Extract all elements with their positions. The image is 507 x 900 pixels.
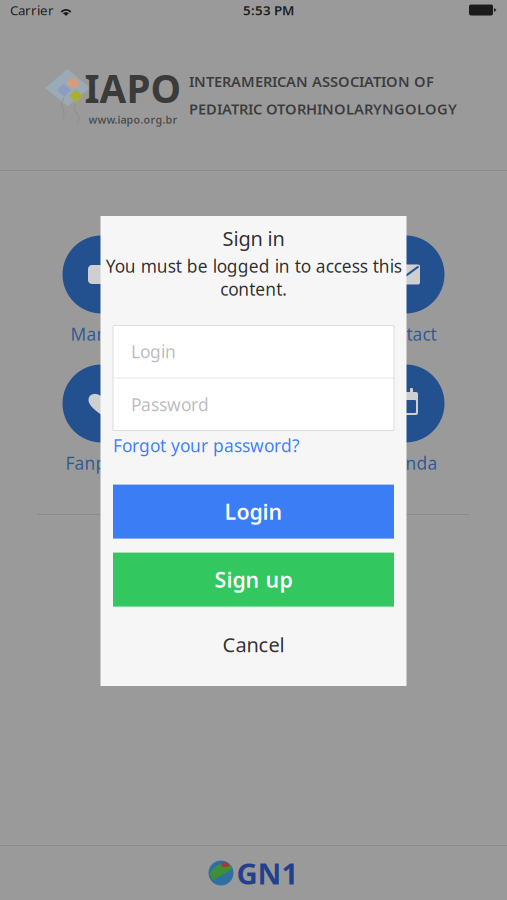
staticText: Login: [224, 497, 282, 526]
staticText: Photos: [226, 451, 281, 474]
staticText: Login: [131, 340, 176, 363]
button[interactable]: Videos: [177, 237, 329, 344]
button[interactable]: Photos: [177, 366, 329, 473]
button[interactable]: Forgot your password?: [113, 433, 394, 459]
staticText: www.iapo.org.br: [88, 113, 177, 127]
staticText: Agenda: [373, 451, 437, 474]
button[interactable]: Login: [113, 485, 394, 539]
staticText: Sign up: [214, 565, 292, 594]
staticText: IAPO: [84, 62, 181, 113]
button[interactable]: Agenda: [329, 366, 481, 473]
button[interactable]: Fanpage: [25, 366, 177, 473]
staticText: PEDIATRIC OTORHINOLARYNGOLOGY: [189, 99, 457, 118]
staticText: Fanpage: [65, 451, 137, 474]
staticText: Forgot your password?: [113, 434, 300, 457]
staticText: GN1: [236, 853, 298, 892]
staticText: Videos: [227, 322, 280, 345]
button[interactable]: Sign up: [113, 553, 394, 607]
staticText: You must be logged in to access this con…: [105, 255, 401, 301]
staticText: Contact: [374, 322, 436, 345]
button[interactable]: Cancel: [113, 619, 394, 671]
staticText: INTERAMERICAN ASSOCIATION OF: [189, 71, 434, 91]
staticText: Cancel: [222, 631, 284, 658]
staticText: Carrier: [10, 1, 54, 19]
button[interactable]: Contact: [329, 237, 481, 344]
staticText: Password: [131, 393, 209, 416]
staticText: 5:53 PM: [243, 1, 294, 19]
button[interactable]: Manual: [25, 237, 177, 344]
staticText: Sign in: [222, 225, 284, 252]
staticText: Manual: [70, 322, 132, 345]
